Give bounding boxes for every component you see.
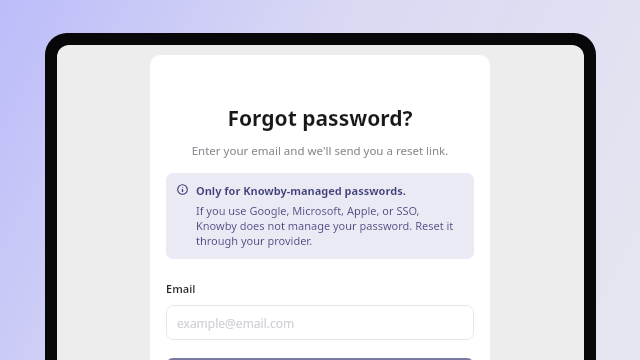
staticText: Email xyxy=(166,281,196,296)
staticText: If you use Google, Microsoft, Apple, or … xyxy=(196,203,462,248)
staticText: example@email.com xyxy=(177,315,295,331)
staticText: Only for Knowby-managed passwords. xyxy=(196,183,406,198)
staticText: Enter your email and we'll send you a re… xyxy=(166,143,474,159)
staticText: Forgot password? xyxy=(166,104,474,133)
button[interactable]: example@email.com xyxy=(166,305,474,340)
button[interactable]: Send Reset Link xyxy=(166,358,474,360)
